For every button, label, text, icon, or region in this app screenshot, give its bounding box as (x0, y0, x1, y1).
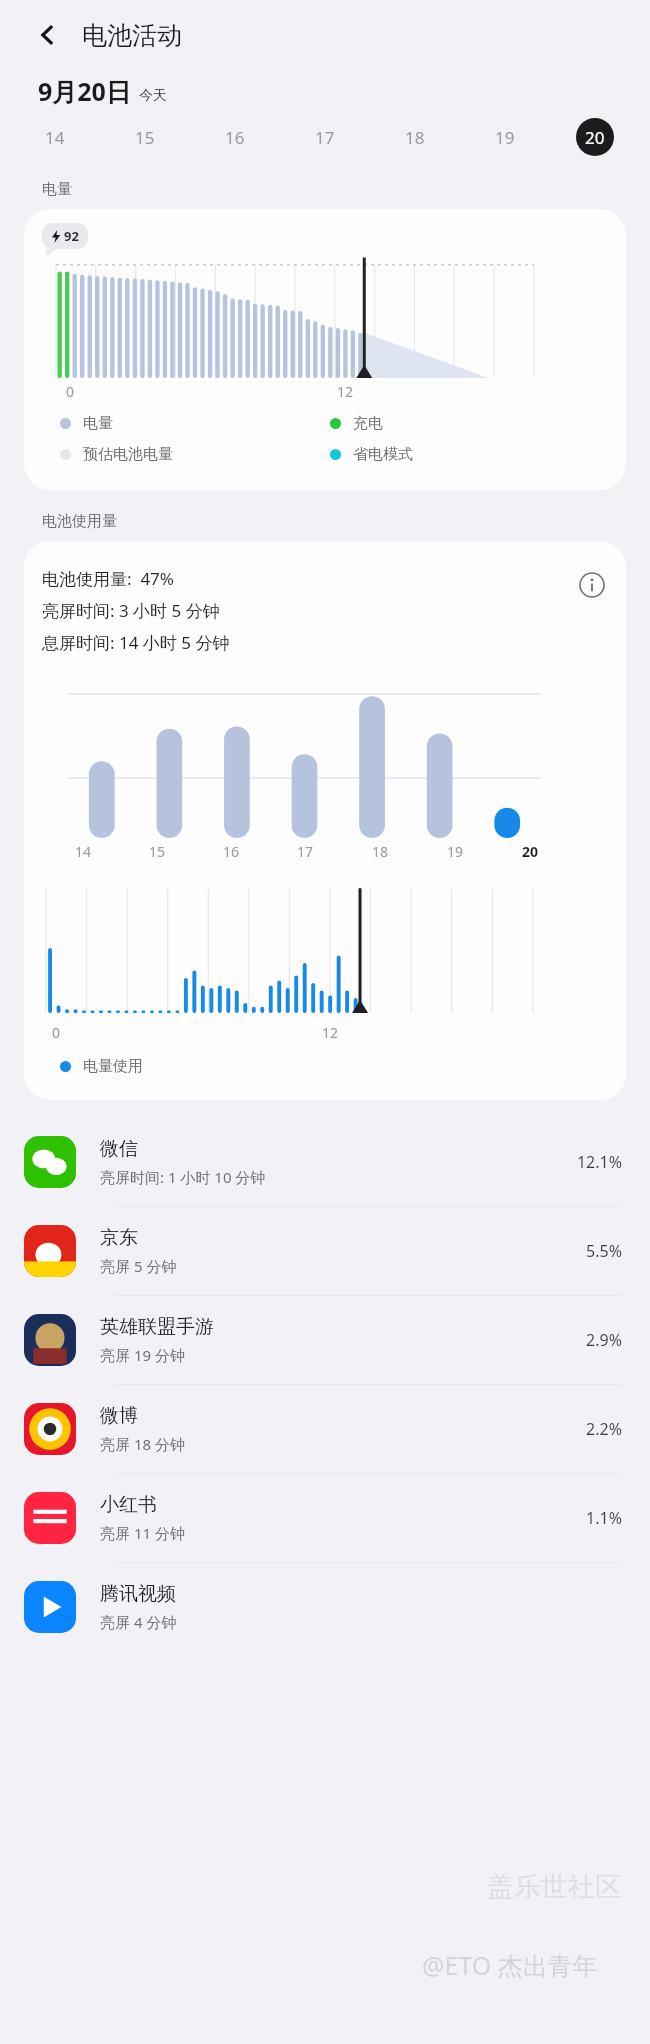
button[interactable]: Info (574, 567, 610, 603)
button[interactable]: 京东 (0, 1207, 650, 1295)
staticText: 15 (135, 126, 155, 149)
staticText: 电池活动 (82, 20, 182, 51)
staticText: 17 (315, 126, 335, 149)
staticText: 20 (585, 126, 605, 149)
staticText: 充电 (353, 414, 383, 433)
button[interactable]: 小红书 (0, 1474, 650, 1562)
staticText: 19 (495, 126, 515, 149)
staticText: 京东 (100, 1226, 138, 1250)
staticText: 9月20日 (38, 74, 131, 108)
staticText: 18 (405, 126, 425, 149)
button[interactable]: 17 (280, 108, 370, 166)
staticText: 亮屏 5 分钟 (100, 1256, 177, 1276)
staticText: 16 (223, 842, 240, 861)
staticText: 微信 (100, 1137, 138, 1161)
staticText: 2.2% (586, 1418, 622, 1440)
staticText: 17 (297, 842, 314, 861)
staticText: 20 (522, 842, 539, 861)
button[interactable]: 16 (190, 108, 280, 166)
staticText: 亮屏 19 分钟 (100, 1345, 185, 1365)
staticText: 亮屏 18 分钟 (100, 1434, 185, 1454)
staticText: 16 (225, 126, 245, 149)
staticText: 小红书 (100, 1493, 157, 1517)
staticText: 14 (75, 842, 92, 861)
staticText: 盖乐世社区 (487, 1870, 622, 1904)
staticText: 12 (322, 1023, 339, 1042)
staticText: 19 (447, 842, 464, 861)
button[interactable]: 英雄联盟手游 (0, 1296, 650, 1384)
button[interactable]: 92 (24, 209, 626, 490)
staticText: 14 (45, 126, 65, 149)
staticText: 亮屏 4 分钟 (100, 1612, 177, 1632)
button[interactable]: 15 (100, 108, 190, 166)
staticText: 电池使用量 (42, 512, 117, 531)
staticText: 亮屏 11 分钟 (100, 1523, 185, 1543)
staticText: 5.5% (586, 1240, 622, 1262)
button[interactable]: 18 (370, 108, 460, 166)
button[interactable]: 20 (550, 108, 640, 166)
staticText: 息屏时间: 14 小时 5 分钟 (42, 631, 230, 654)
staticText: 18 (372, 842, 389, 861)
staticText: 省电模式 (353, 445, 413, 464)
staticText: 电池使用量: 47% (42, 567, 174, 590)
staticText: 预估电池电量 (83, 445, 173, 464)
button[interactable]: 14 (10, 108, 100, 166)
staticText: @ETO 杰出青年 (422, 1948, 598, 1982)
staticText: 92 (64, 227, 79, 245)
staticText: 0 (52, 1023, 61, 1042)
staticText: 12.1% (576, 1151, 622, 1173)
staticText: 电量 (83, 414, 113, 433)
staticText: 12 (337, 382, 354, 401)
staticText: 今天 (139, 87, 167, 105)
button[interactable]: Back (26, 13, 70, 57)
button[interactable]: 腾讯视频 (0, 1563, 650, 1651)
button[interactable]: 微博 (0, 1385, 650, 1473)
staticText: 1.1% (586, 1507, 622, 1529)
staticText: 15 (149, 842, 166, 861)
staticText: 亮屏时间: 3 小时 5 分钟 (42, 599, 220, 622)
staticText: 0 (66, 382, 75, 401)
staticText: 英雄联盟手游 (100, 1315, 214, 1339)
staticText: 腾讯视频 (100, 1582, 176, 1606)
button[interactable]: 19 (460, 108, 550, 166)
button[interactable]: 微信 (0, 1118, 650, 1206)
staticText: 亮屏时间: 1 小时 10 分钟 (100, 1167, 266, 1187)
staticText: 2.9% (586, 1329, 622, 1351)
staticText: 微博 (100, 1404, 138, 1428)
staticText: 电量使用 (83, 1057, 143, 1076)
staticText: 电量 (42, 180, 72, 199)
